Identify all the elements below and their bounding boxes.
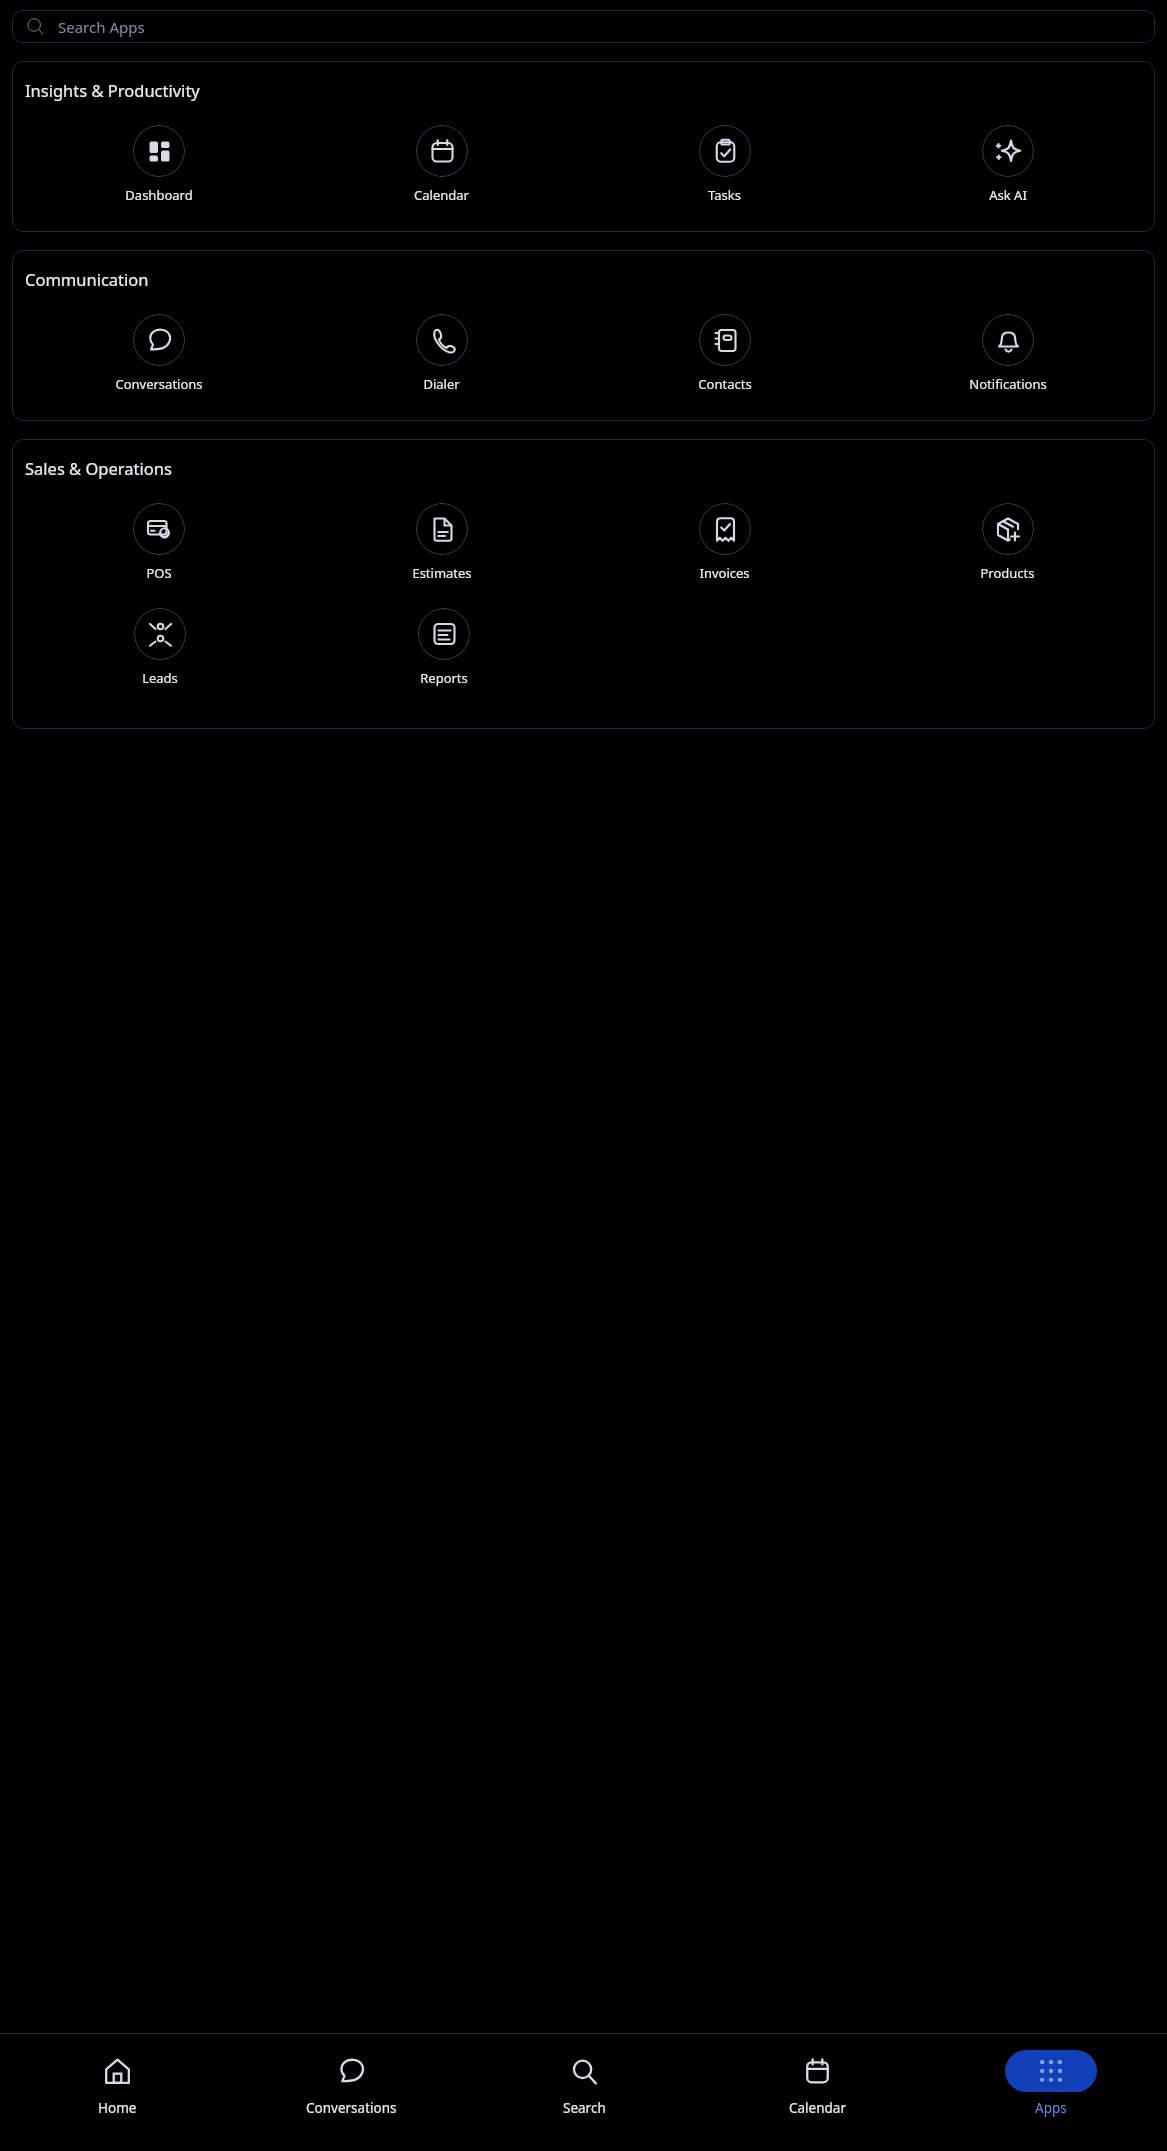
staticText: Conversations <box>306 2099 397 2117</box>
staticText: Conversations <box>115 375 203 393</box>
staticText: Search Apps <box>58 17 145 37</box>
button[interactable]: Search Apps <box>12 10 1155 43</box>
button[interactable]: Products <box>866 501 1149 584</box>
button[interactable]: Invoices <box>583 501 866 584</box>
button[interactable]: POS <box>18 501 300 584</box>
button[interactable]: Conversations <box>18 312 300 395</box>
button[interactable]: Contacts <box>583 312 866 395</box>
staticText: Estimates <box>412 564 472 582</box>
staticText: Ask AI <box>989 186 1027 204</box>
staticText: Dialer <box>423 375 460 393</box>
staticText: Products <box>980 564 1035 582</box>
staticText: Reports <box>420 669 468 687</box>
button[interactable]: Dashboard <box>18 123 300 206</box>
staticText: Calendar <box>414 186 469 204</box>
staticText: Communication <box>25 268 149 290</box>
button[interactable]: Calendar <box>300 123 583 206</box>
button[interactable]: Search <box>468 2046 701 2117</box>
staticText: Home <box>98 2099 137 2117</box>
button[interactable]: Estimates <box>300 501 583 584</box>
button[interactable]: Calendar <box>701 2046 934 2117</box>
staticText: Invoices <box>699 564 750 582</box>
button[interactable]: Dialer <box>300 312 583 395</box>
button[interactable]: Apps <box>934 2046 1167 2117</box>
staticText: Sales & Operations <box>25 457 172 479</box>
button[interactable]: Ask AI <box>866 123 1149 206</box>
staticText: Dashboard <box>125 186 193 204</box>
staticText: Tasks <box>708 186 741 204</box>
staticText: Contacts <box>698 375 752 393</box>
staticText: POS <box>146 564 172 582</box>
button[interactable]: Home <box>0 2046 234 2117</box>
staticText: Insights & Productivity <box>25 79 200 101</box>
staticText: Calendar <box>789 2099 846 2117</box>
staticText: Apps <box>1035 2099 1067 2117</box>
staticText: Search <box>563 2099 606 2117</box>
button[interactable]: Tasks <box>583 123 866 206</box>
button[interactable]: Notifications <box>866 312 1149 395</box>
staticText: Notifications <box>969 375 1047 393</box>
staticText: Leads <box>142 669 178 687</box>
button[interactable]: Conversations <box>234 2046 468 2117</box>
button[interactable]: Leads <box>18 606 302 689</box>
button[interactable]: Reports <box>302 606 586 689</box>
